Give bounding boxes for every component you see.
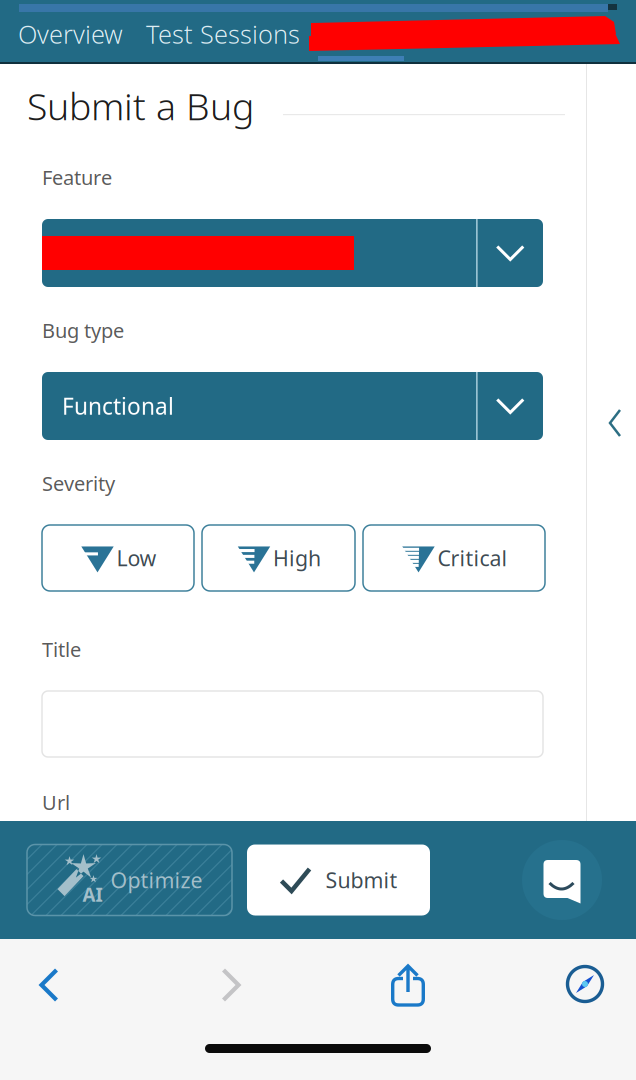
button[interactable]: Test Sessions bbox=[144, 14, 302, 54]
staticText: Bug type bbox=[42, 317, 124, 344]
staticText: AI bbox=[82, 882, 102, 907]
button[interactable]: Collapse panel bbox=[598, 398, 632, 448]
staticText: Knowledge bbox=[518, 20, 636, 54]
staticText: Low bbox=[116, 544, 156, 572]
staticText: High bbox=[273, 544, 321, 572]
staticText: Functional bbox=[62, 391, 174, 421]
button[interactable] bbox=[42, 219, 543, 287]
button[interactable]: Critical bbox=[363, 525, 545, 591]
button[interactable]: High bbox=[202, 525, 355, 591]
staticText: Feature bbox=[42, 164, 112, 191]
staticText: Test Sessions bbox=[146, 17, 300, 51]
button[interactable]: Submit bbox=[247, 844, 430, 915]
button[interactable]: Open chat bbox=[522, 840, 602, 920]
button[interactable]: Low bbox=[42, 525, 194, 591]
button[interactable]: Overview bbox=[16, 14, 125, 54]
button[interactable]: Functional bbox=[42, 372, 543, 440]
staticText: Submit bbox=[325, 866, 397, 894]
staticText: Documentation bbox=[316, 20, 496, 54]
button[interactable]: Forward bbox=[205, 961, 257, 1009]
staticText: Severity bbox=[42, 470, 115, 497]
button[interactable]: Share bbox=[382, 958, 434, 1010]
staticText: Title bbox=[42, 636, 81, 663]
button[interactable]: Tabs bbox=[559, 959, 611, 1009]
staticText: Critical bbox=[437, 544, 507, 572]
button[interactable]: AI bbox=[27, 844, 232, 915]
staticText: Url bbox=[42, 789, 70, 816]
staticText: Submit a Bug bbox=[27, 81, 254, 131]
staticText: Overview bbox=[18, 17, 123, 51]
button[interactable]: Back bbox=[23, 961, 75, 1009]
staticText: Optimize bbox=[110, 866, 202, 894]
